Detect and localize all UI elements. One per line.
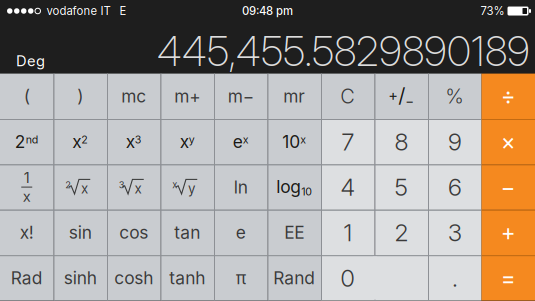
button[interactable]: x3 [107, 119, 160, 164]
button[interactable]: Rad [0, 255, 53, 301]
button[interactable]: x2 [53, 119, 107, 164]
button[interactable]: 1 [321, 210, 374, 255]
button[interactable]: − [481, 164, 535, 210]
staticText: tan [174, 222, 200, 243]
staticText: mc [121, 86, 146, 107]
staticText: ÷ [501, 83, 516, 110]
staticText: x [81, 181, 88, 197]
staticText: +/− [388, 84, 414, 109]
button[interactable]: 8 [374, 119, 428, 164]
staticText: 3 [448, 218, 462, 247]
button[interactable]: 5 [374, 164, 428, 210]
staticText: ) [77, 86, 83, 107]
button[interactable]: ) [53, 74, 107, 119]
staticText: 4 [340, 173, 355, 202]
button[interactable]: × [481, 119, 535, 164]
button[interactable]: ln [214, 164, 267, 210]
button[interactable]: + [481, 210, 535, 255]
staticText: π [236, 267, 246, 288]
button[interactable]: xy [160, 119, 214, 164]
button[interactable]: 7 [321, 119, 374, 164]
staticText: 1 [343, 218, 352, 247]
staticText: 1 [24, 169, 30, 187]
staticText: 09:48 pm [242, 4, 293, 18]
staticText: log10 [276, 176, 312, 198]
button[interactable]: 0 [321, 255, 428, 301]
staticText: x [134, 181, 141, 197]
staticText: Deg [16, 52, 45, 70]
button[interactable]: 4 [321, 164, 374, 210]
staticText: 2 [394, 218, 408, 247]
button[interactable]: 9 [428, 119, 481, 164]
staticText: EE [284, 222, 304, 243]
button[interactable]: % [428, 74, 481, 119]
button[interactable]: 2nd [0, 119, 53, 164]
staticText: 6 [448, 173, 462, 202]
button[interactable]: 3 [428, 210, 481, 255]
button[interactable]: sinh [53, 255, 107, 301]
staticText: 2nd [15, 131, 39, 152]
staticText: y [188, 181, 195, 197]
staticText: 445,455.5829890189 [157, 26, 530, 76]
staticText: sin [69, 222, 92, 243]
button[interactable]: ex [214, 119, 267, 164]
staticText: 2 [65, 179, 71, 190]
button[interactable]: m+ [160, 74, 214, 119]
button[interactable]: 2 [374, 210, 428, 255]
staticText: Rad [11, 267, 43, 288]
staticText: e [236, 222, 246, 243]
button[interactable]: π [214, 255, 267, 301]
staticText: 9 [448, 127, 462, 156]
staticText: m+ [174, 86, 200, 107]
staticText: 0 [340, 263, 355, 292]
staticText: Rand [273, 267, 315, 288]
staticText: 5 [394, 173, 408, 202]
button[interactable]: 6 [428, 164, 481, 210]
staticText: 8 [394, 127, 408, 156]
staticText: ln [234, 177, 248, 198]
staticText: cos [119, 222, 148, 243]
staticText: tanh [169, 267, 205, 288]
button[interactable]: C [321, 74, 374, 119]
staticText: x2 [72, 131, 88, 152]
staticText: = [501, 264, 516, 292]
button[interactable]: tanh [160, 255, 214, 301]
button[interactable]: EE [267, 210, 321, 255]
staticText: × [501, 128, 516, 155]
staticText: 7 [341, 127, 354, 156]
staticText: x [23, 188, 31, 205]
button[interactable]: . [428, 255, 481, 301]
button[interactable]: 3 [107, 164, 160, 210]
button[interactable]: mc [107, 74, 160, 119]
button[interactable]: x! [0, 210, 53, 255]
button[interactable]: e [214, 210, 267, 255]
button[interactable]: sin [53, 210, 107, 255]
staticText: ex [233, 131, 249, 152]
button[interactable]: ÷ [481, 74, 535, 119]
staticText: C [340, 84, 355, 108]
button[interactable]: 1 [0, 164, 53, 210]
staticText: mr [283, 86, 305, 107]
button[interactable]: cosh [107, 255, 160, 301]
button[interactable]: log10 [267, 164, 321, 210]
button[interactable]: 2 [53, 164, 107, 210]
staticText: x3 [126, 131, 142, 152]
button[interactable]: m− [214, 74, 267, 119]
button[interactable]: = [481, 255, 535, 301]
staticText: cosh [114, 267, 153, 288]
staticText: m− [228, 86, 254, 107]
button[interactable]: x [160, 164, 214, 210]
button[interactable]: cos [107, 210, 160, 255]
staticText: 10x [282, 131, 306, 152]
button[interactable]: mr [267, 74, 321, 119]
staticText: 3 [119, 179, 125, 190]
button[interactable]: 10x [267, 119, 321, 164]
button[interactable]: Change sign [374, 74, 428, 119]
staticText: − [501, 173, 516, 201]
staticText: . [452, 263, 458, 292]
staticText: + [501, 219, 516, 246]
button[interactable]: Rand [267, 255, 321, 301]
button[interactable]: tan [160, 210, 214, 255]
button[interactable]: ( [0, 74, 53, 119]
staticText: 73% [480, 4, 504, 18]
